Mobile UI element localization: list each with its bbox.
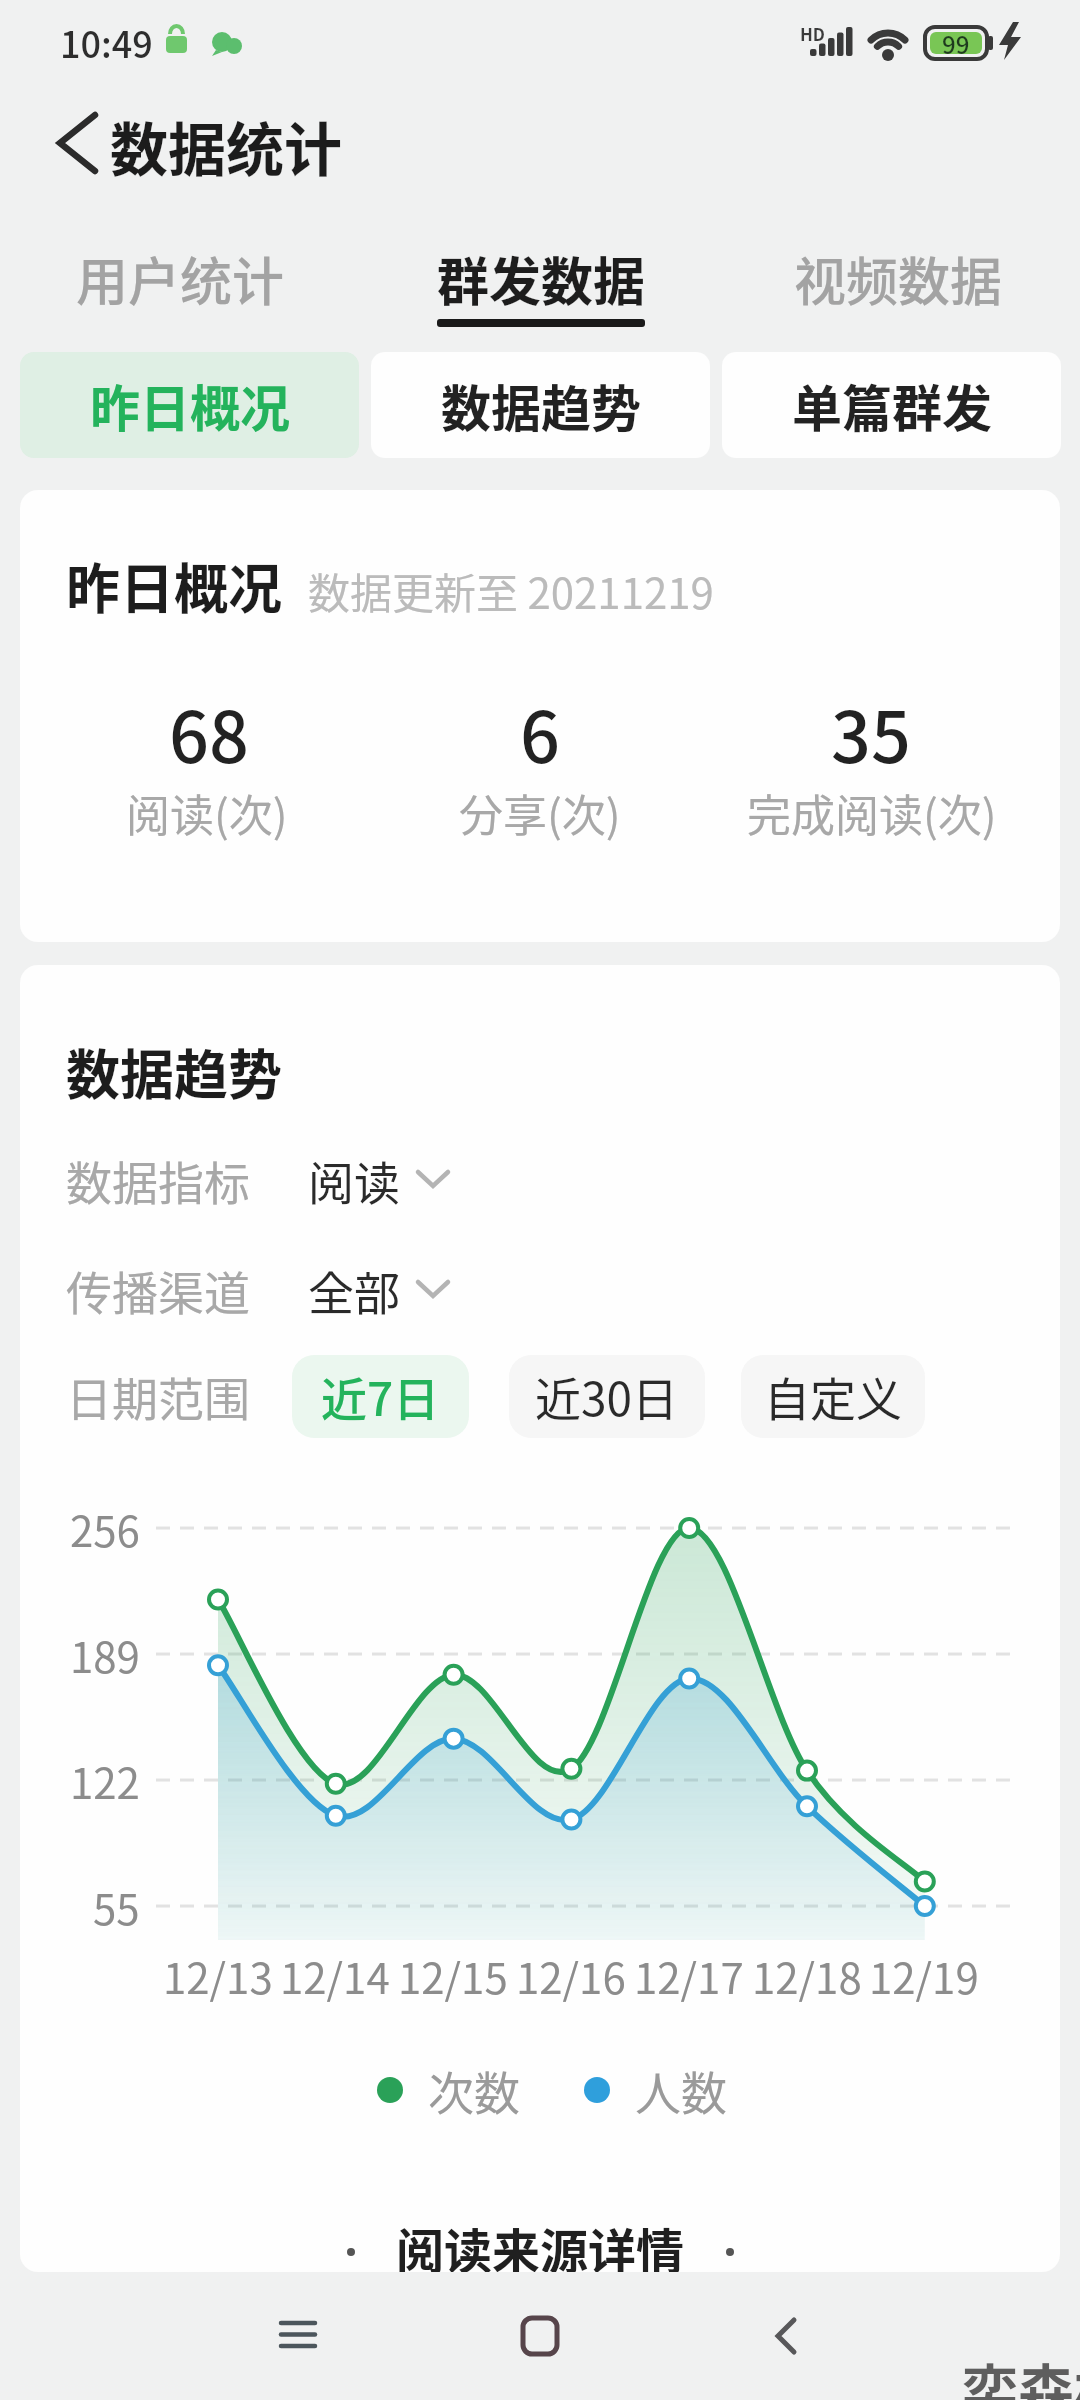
staticText: 阅读 [308, 1147, 400, 1214]
staticText: 群发数据 [437, 241, 646, 316]
staticText: 视频数据 [794, 241, 1003, 316]
staticText: 35 [831, 682, 911, 783]
staticText: 数据统计 [110, 104, 343, 188]
staticText: 12/14 [280, 1945, 390, 2006]
button[interactable]: 数据趋势 [371, 352, 710, 458]
staticText: 12/18 [752, 1945, 862, 2006]
staticText: HD [800, 21, 826, 46]
staticText: 单篇群发 [792, 369, 992, 441]
staticText: 次数 [428, 2057, 520, 2124]
staticText: 12/17 [634, 1945, 744, 2006]
staticText: 12/19 [869, 1945, 979, 2006]
staticText: 阅读来源详情 [396, 2213, 685, 2272]
staticText: 数据指标 [66, 1147, 250, 1214]
button[interactable]: 全部 [300, 1230, 470, 1350]
staticText: 12/15 [398, 1945, 508, 2006]
staticText: 近30日 [535, 1363, 679, 1430]
button[interactable]: 用户统计 [60, 226, 300, 330]
staticText: 完成阅读(次) [747, 781, 997, 845]
staticText: 99 [942, 26, 970, 61]
button[interactable]: 群发数据 [421, 226, 661, 330]
staticText: 12/13 [163, 1945, 273, 2006]
staticText: 10:49 [60, 16, 153, 68]
staticText: 阅读(次) [126, 781, 288, 845]
staticText: 189 [70, 1624, 140, 1685]
staticText: 日期范围 [66, 1363, 250, 1430]
button[interactable]: 昨日概况 [20, 352, 359, 458]
staticText: 分享(次) [459, 781, 621, 845]
staticText: 数据更新至 20211219 [308, 560, 714, 621]
staticText: 数据趋势 [441, 369, 641, 441]
staticText: 68 [169, 682, 249, 783]
staticText: 12/16 [516, 1945, 626, 2006]
button[interactable]: 阅读 [300, 1120, 470, 1240]
staticText: 自定义 [764, 1363, 902, 1430]
staticText: 6 [520, 682, 560, 783]
staticText: 数据趋势 [66, 1032, 282, 1110]
staticText: 传播渠道 [66, 1257, 250, 1324]
staticText: 122 [70, 1750, 140, 1811]
staticText: 昨日概况 [90, 369, 290, 441]
button[interactable]: 单篇群发 [722, 352, 1061, 458]
button[interactable]: 视频数据 [778, 226, 1018, 330]
staticText: 近7日 [321, 1363, 440, 1430]
staticText: 55 [93, 1876, 140, 1937]
staticText: 人数 [635, 2057, 727, 2124]
button[interactable]: 近7日 [292, 1355, 469, 1438]
staticText: 256 [70, 1498, 140, 1559]
button[interactable]: 近30日 [509, 1355, 705, 1438]
staticText: 用户统计 [76, 241, 285, 316]
button[interactable]: 自定义 [741, 1355, 925, 1438]
staticText: 奕森格 [962, 2346, 1080, 2400]
staticText: 昨日概况 [66, 546, 282, 624]
staticText: 全部 [308, 1257, 400, 1324]
